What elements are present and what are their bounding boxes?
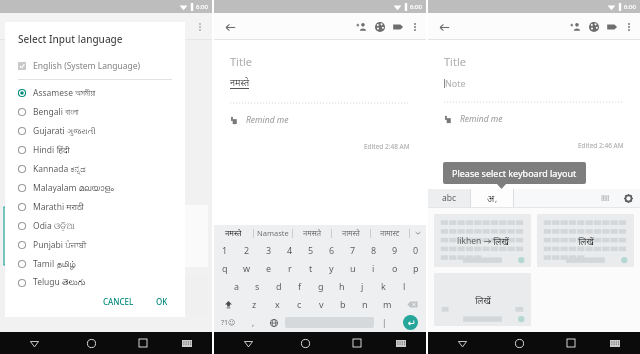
button[interactable]: More options [407, 19, 423, 35]
button[interactable]: Malayalam മലയാളം [5, 178, 185, 197]
button[interactable]: o [384, 259, 405, 277]
button[interactable]: Kannada ಕನ್ನಡ [5, 159, 185, 178]
button[interactable]: More options [621, 19, 637, 35]
button[interactable]: Change color [371, 18, 389, 36]
button[interactable]: j [352, 277, 373, 295]
button[interactable]: y [321, 259, 342, 277]
button[interactable]: Keyboard layout option [434, 214, 531, 267]
button[interactable]: Backspace [398, 295, 426, 313]
button[interactable]: Switch keyboard [178, 334, 196, 352]
button[interactable]: OK [149, 292, 175, 309]
button[interactable]: f [289, 277, 310, 295]
button[interactable]: Tamil தமிழ் [5, 254, 185, 273]
button[interactable]: Home [296, 334, 314, 352]
button[interactable]: d [268, 277, 289, 295]
button[interactable]: a [226, 277, 247, 295]
button[interactable]: English (System Language) [5, 56, 185, 75]
button[interactable]: 2 [236, 241, 258, 259]
staticText: Hindi हिंदी [33, 144, 70, 156]
button[interactable]: m [376, 295, 398, 313]
button[interactable]: Back [435, 18, 453, 36]
button[interactable]: s [247, 277, 268, 295]
button[interactable]: , [243, 313, 263, 332]
button[interactable]: Assamese অসমীয়া [5, 83, 185, 102]
button[interactable]: Settings [616, 189, 640, 207]
button[interactable]: x [266, 295, 288, 313]
button[interactable]: 4 [279, 241, 300, 259]
button[interactable]: अ [471, 189, 513, 207]
button[interactable]: Keyboard layout option [434, 273, 531, 326]
button[interactable]: नामस्ते [332, 225, 370, 241]
button[interactable]: 9 [384, 241, 405, 259]
button[interactable]: 6 [321, 241, 342, 259]
button[interactable]: Gujarati ગુજરાતી [5, 121, 185, 140]
button[interactable]: c [288, 295, 310, 313]
button[interactable]: Marathi मराठी [5, 197, 185, 216]
button[interactable]: Punjabi ਪੰਜਾਬੀ [5, 235, 185, 254]
button[interactable]: u [342, 259, 363, 277]
button[interactable]: z [243, 295, 266, 313]
button[interactable]: Recents [134, 334, 152, 352]
button[interactable]: Home [82, 334, 100, 352]
button[interactable]: b [332, 295, 354, 313]
button[interactable]: Hindi हिंदी [5, 140, 185, 159]
button[interactable]: t [300, 259, 321, 277]
button[interactable]: ?1☺ [214, 313, 243, 332]
button[interactable]: Keyboard layouts [594, 189, 616, 207]
button[interactable]: Home [510, 334, 528, 352]
button[interactable]: w [236, 259, 258, 277]
button[interactable]: Change color [585, 18, 603, 36]
button[interactable]: k [373, 277, 394, 295]
button[interactable]: Bengali বাংলা [5, 102, 185, 121]
staticText: Punjabi ਪੰਜਾਬੀ [33, 239, 87, 251]
button[interactable]: Back [453, 334, 471, 352]
button[interactable]: h [331, 277, 352, 295]
button[interactable]: Back [239, 334, 257, 352]
button[interactable]: g [310, 277, 331, 295]
button[interactable]: Remind me [230, 114, 289, 126]
button[interactable]: More suggestions [410, 225, 426, 241]
button[interactable]: नमस्ते [214, 225, 253, 241]
button[interactable]: q [214, 259, 236, 277]
button[interactable]: Namaste [254, 225, 292, 241]
staticText: w [243, 262, 251, 274]
button[interactable]: Recents [348, 334, 366, 352]
button[interactable]: Change language [263, 313, 285, 332]
button[interactable]: 1 [214, 241, 236, 259]
button[interactable]: Label [603, 18, 621, 36]
button[interactable]: e [258, 259, 279, 277]
button[interactable]: p [405, 259, 426, 277]
button[interactable]: r [279, 259, 300, 277]
button[interactable]: Back [25, 334, 43, 352]
button[interactable]: Remind me [444, 113, 503, 125]
button[interactable]: 7 [342, 241, 363, 259]
button[interactable]: 5 [300, 241, 321, 259]
button[interactable]: Recents [562, 334, 580, 352]
button[interactable]: Enter [403, 315, 418, 330]
button[interactable]: Telugu తెలుగు [5, 273, 185, 292]
button[interactable]: Add collaborator [353, 18, 371, 36]
button[interactable]: n [354, 295, 376, 313]
staticText: English (System Language) [33, 60, 141, 72]
button[interactable]: Keyboard layout option [537, 214, 634, 267]
button[interactable]: l [394, 277, 415, 295]
button[interactable]: Switch keyboard [606, 334, 624, 352]
button[interactable]: Shift [214, 295, 243, 313]
staticText: 1 [222, 244, 228, 256]
button[interactable]: 8 [363, 241, 384, 259]
button[interactable]: 3 [258, 241, 279, 259]
button[interactable]: नामास्ट [371, 225, 409, 241]
button[interactable]: 0 [405, 241, 426, 259]
button[interactable]: Label [389, 18, 407, 36]
button[interactable]: | [374, 313, 394, 332]
button[interactable]: abc [428, 189, 470, 207]
button[interactable]: Switch keyboard [392, 334, 410, 352]
button[interactable]: Add collaborator [567, 18, 585, 36]
button[interactable]: नमसते [293, 225, 331, 241]
button[interactable]: i [363, 259, 384, 277]
button[interactable]: v [310, 295, 332, 313]
button[interactable]: CANCEL [96, 292, 141, 309]
button[interactable]: Back [221, 18, 239, 36]
button[interactable]: Odia ଓଡ଼ିଆ [5, 216, 185, 235]
